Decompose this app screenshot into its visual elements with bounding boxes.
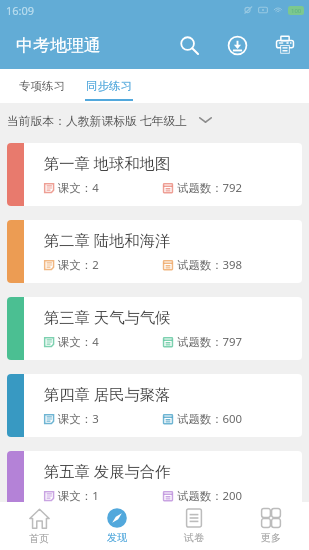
- staticText: 课文：4: [58, 334, 99, 350]
- staticText: 课文：4: [58, 180, 99, 196]
- staticText: 试卷: [184, 531, 204, 544]
- staticText: 试题数：200: [177, 488, 243, 504]
- button[interactable]: 发现: [78, 502, 155, 550]
- staticText: 试题数：398: [177, 257, 243, 273]
- staticText: 当前版本：人教新课标版 七年级上: [7, 112, 188, 128]
- button[interactable]: Search: [167, 23, 211, 67]
- staticText: 课文：1: [58, 488, 99, 504]
- staticText: 试题数：792: [177, 180, 243, 196]
- button[interactable]: 首页: [0, 502, 78, 550]
- button[interactable]: 试卷: [155, 502, 232, 550]
- staticText: 更多: [261, 531, 281, 544]
- button[interactable]: 第五章 发展与合作: [7, 451, 302, 514]
- staticText: 第三章 天气与气候: [44, 307, 171, 328]
- button[interactable]: 第三章 天气与气候: [7, 297, 302, 360]
- staticText: 首页: [29, 532, 49, 545]
- staticText: 试题数：797: [177, 334, 243, 350]
- staticText: 第二章 陆地和海洋: [44, 230, 171, 251]
- staticText: 第五章 发展与合作: [44, 461, 171, 482]
- button[interactable]: 更多: [232, 502, 309, 550]
- staticText: 课文：2: [58, 257, 99, 273]
- staticText: 第四章 居民与聚落: [44, 384, 171, 405]
- staticText: 试题数：600: [177, 411, 243, 427]
- staticText: 课文：3: [58, 411, 99, 427]
- button[interactable]: Change version: [194, 109, 216, 131]
- staticText: 100: [291, 7, 302, 15]
- staticText: 16:09: [6, 3, 35, 18]
- button[interactable]: Download: [215, 23, 259, 67]
- staticText: 同步练习: [86, 79, 132, 93]
- staticText: 发现: [107, 531, 127, 544]
- staticText: 专项练习: [19, 79, 65, 93]
- button[interactable]: Print: [263, 23, 307, 67]
- staticText: 第一章 地球和地图: [44, 153, 171, 174]
- button[interactable]: 第一章 地球和地图: [7, 143, 302, 206]
- button[interactable]: 专项练习: [0, 69, 83, 103]
- button[interactable]: 第二章 陆地和海洋: [7, 220, 302, 283]
- staticText: 中考地理通: [16, 35, 101, 56]
- button[interactable]: 同步练习: [76, 69, 141, 103]
- button[interactable]: 第四章 居民与聚落: [7, 374, 302, 437]
